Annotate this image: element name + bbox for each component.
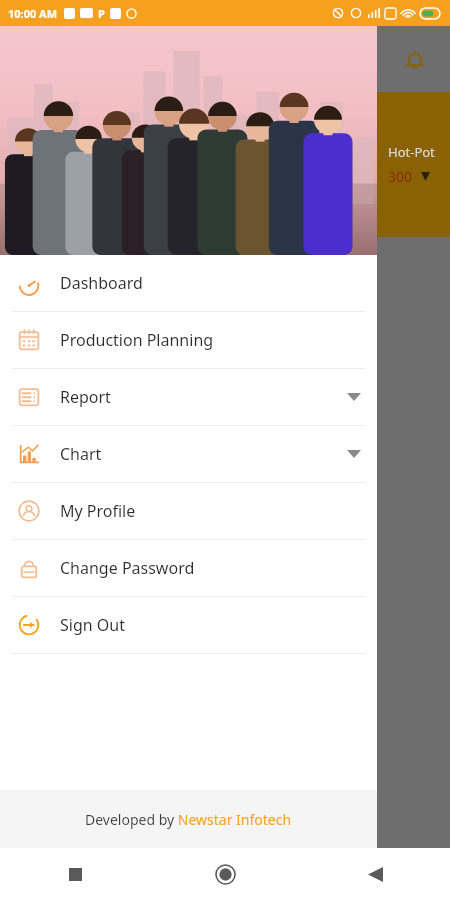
staticText: Report: [60, 386, 111, 408]
staticText: Change Password: [60, 557, 195, 579]
button[interactable]: Back: [300, 848, 450, 900]
staticText: Chart: [60, 443, 102, 465]
button[interactable]: Home: [150, 848, 300, 900]
button[interactable]: Change Password: [0, 540, 377, 596]
button[interactable]: My Profile: [0, 483, 377, 539]
staticText: Hot-Pot: [388, 143, 435, 161]
staticText: Production Planning: [60, 329, 214, 351]
staticText: My Profile: [60, 500, 136, 522]
button[interactable]: Chart: [0, 426, 377, 482]
button[interactable]: Production Planning: [0, 312, 377, 368]
button[interactable]: Sign Out: [0, 597, 377, 653]
staticText: P: [98, 6, 105, 21]
button[interactable]: Recents: [0, 848, 150, 900]
button[interactable]: Report: [0, 369, 377, 425]
button[interactable]: Dashboard: [0, 255, 377, 311]
staticText: Sign Out: [60, 614, 125, 636]
staticText: 300: [388, 167, 413, 186]
staticText: 10:00 AM: [8, 6, 58, 21]
staticText: Dashboard: [60, 272, 143, 294]
staticText: Developed by Newstar Infotech: [85, 810, 292, 829]
button[interactable]: Developed by Newstar Infotech: [0, 790, 377, 848]
button[interactable]: Notifications: [395, 40, 435, 80]
